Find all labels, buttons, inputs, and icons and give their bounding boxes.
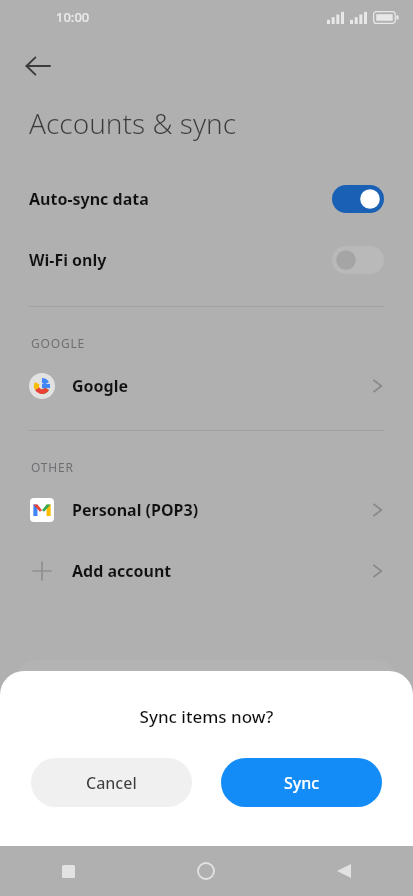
- staticText: GOOGLE: [31, 335, 85, 351]
- staticText: Wi-Fi only: [29, 249, 332, 271]
- button[interactable]: Cancel: [31, 758, 192, 807]
- button[interactable]: Personal (POP3): [0, 479, 413, 540]
- staticText: 10:00: [56, 8, 90, 26]
- staticText: Sync: [284, 772, 320, 794]
- button[interactable]: Back: [275, 846, 413, 896]
- staticText: Accounts & sync: [29, 104, 237, 142]
- staticText: Google: [72, 375, 372, 397]
- staticText: Personal (POP3): [72, 499, 372, 521]
- button[interactable]: Google: [0, 355, 413, 416]
- button[interactable]: Recents: [0, 846, 137, 896]
- button[interactable]: Add account: [0, 540, 413, 601]
- button[interactable]: Auto-sync data: [0, 168, 413, 229]
- staticText: Auto-sync data: [29, 188, 332, 210]
- staticText: Sync items now?: [0, 705, 413, 728]
- staticText: Cancel: [86, 772, 137, 794]
- button[interactable]: Back: [14, 42, 62, 90]
- button[interactable]: Wi-Fi only: [0, 229, 413, 290]
- button[interactable]: Sync: [221, 758, 382, 807]
- staticText: OTHER: [31, 459, 74, 475]
- button[interactable]: Home: [137, 846, 275, 896]
- staticText: Add account: [72, 560, 372, 582]
